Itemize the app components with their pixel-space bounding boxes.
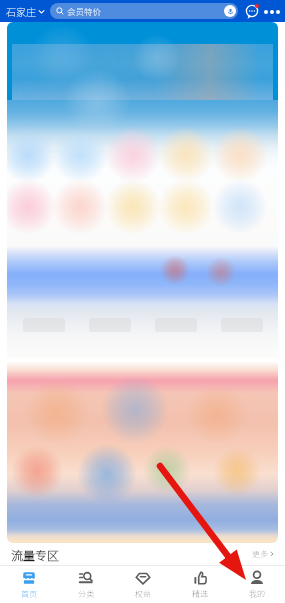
button[interactable]: 更多	[252, 548, 275, 560]
staticText: 更多	[252, 548, 268, 560]
button[interactable]: 流量专区	[11, 546, 60, 563]
staticText: 我的	[249, 588, 265, 600]
button[interactable]: Messages	[243, 3, 260, 20]
button[interactable]: 分类	[57, 566, 114, 603]
button[interactable]: 会员特价	[50, 3, 238, 19]
staticText: 分类	[78, 588, 94, 600]
staticText: 权益	[135, 588, 151, 600]
staticText: 首页	[21, 588, 37, 600]
button[interactable]: 我的	[228, 566, 285, 603]
button[interactable]: 权益	[114, 566, 171, 603]
staticText: 石家庄	[6, 4, 36, 18]
staticText: 流量专区	[11, 546, 60, 563]
staticText: 会员特价	[67, 5, 102, 17]
button[interactable]: More options	[263, 3, 280, 20]
button[interactable]: 首页	[0, 566, 57, 603]
button[interactable]: 精选	[171, 566, 228, 603]
staticText: 精选	[192, 588, 208, 600]
button[interactable]: Voice search	[224, 5, 236, 17]
button[interactable]: 石家庄	[5, 4, 46, 18]
